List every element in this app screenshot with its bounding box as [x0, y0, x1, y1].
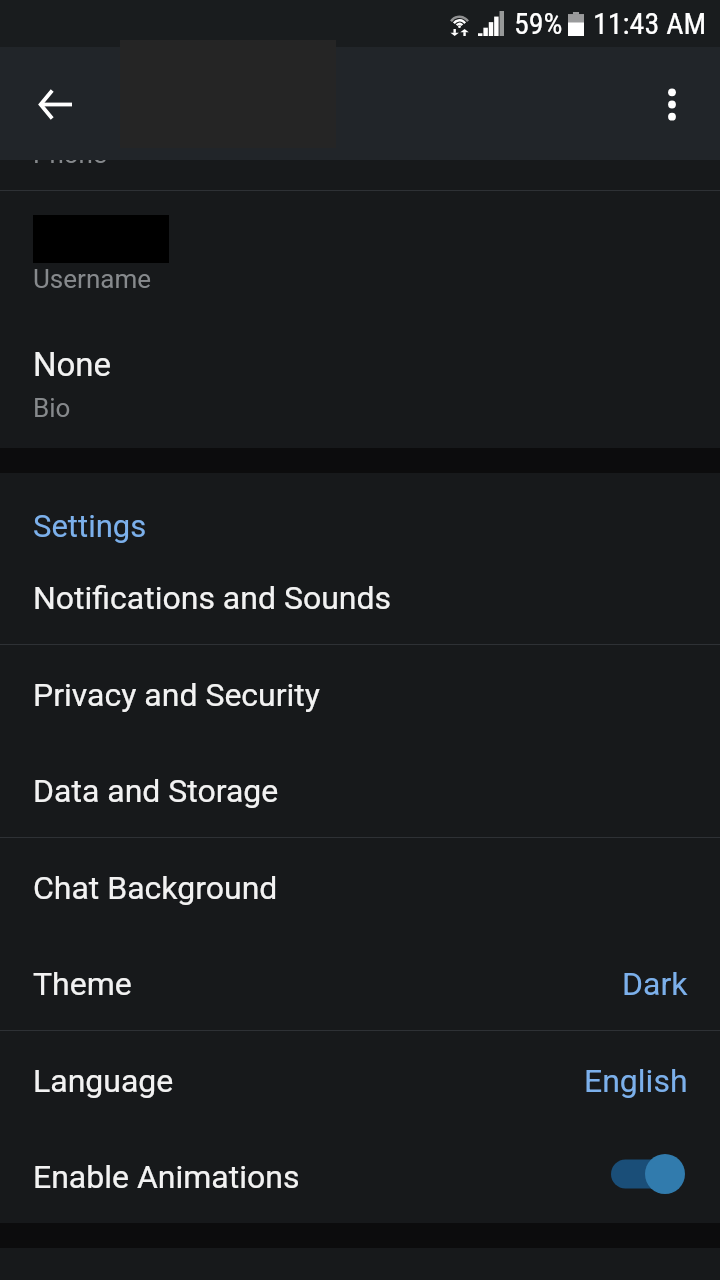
- staticText: Data and Storage: [33, 772, 279, 810]
- button[interactable]: Notifications and Sounds: [0, 548, 720, 644]
- staticText: Notifications and Sounds: [33, 579, 392, 617]
- button[interactable]: Chat Background: [0, 838, 720, 934]
- staticText: Chat Background: [33, 869, 278, 907]
- staticText: Username: [33, 264, 151, 294]
- staticText: Phone: [33, 160, 107, 169]
- button[interactable]: Enable Animations: [0, 1127, 720, 1223]
- staticText: Language: [33, 1062, 174, 1100]
- button[interactable]: Back: [23, 72, 87, 136]
- staticText: Enable Animations: [33, 1158, 300, 1196]
- staticText: 59%: [514, 6, 563, 41]
- staticText: Dark: [622, 965, 688, 1003]
- button[interactable]: Theme: [0, 934, 720, 1030]
- button[interactable]: Language: [0, 1031, 720, 1127]
- staticText: Bio: [33, 393, 71, 423]
- button[interactable]: Privacy and Security: [0, 645, 720, 741]
- button[interactable]: None: [0, 319, 720, 448]
- staticText: Privacy and Security: [33, 676, 320, 714]
- staticText: Theme: [33, 965, 132, 1003]
- button[interactable]: More options: [640, 72, 704, 136]
- button[interactable]: Username: [0, 191, 720, 319]
- staticText: None: [33, 345, 112, 384]
- button[interactable]: Data and Storage: [0, 741, 720, 837]
- staticText: English: [584, 1062, 688, 1100]
- staticText: 11:43 AM: [593, 6, 707, 41]
- staticText: Settings: [33, 508, 147, 544]
